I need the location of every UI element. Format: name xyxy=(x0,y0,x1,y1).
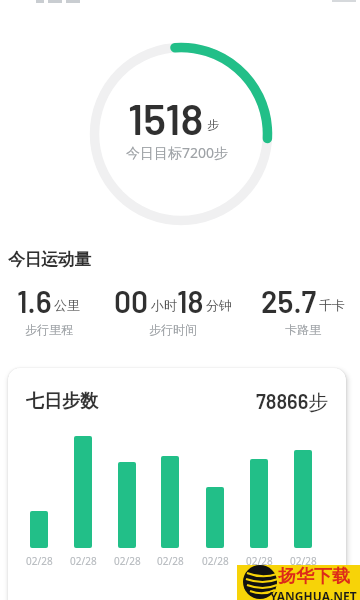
staticText: 25.7 xyxy=(261,283,317,319)
staticText: 02/28 xyxy=(246,554,273,568)
staticText: 今日运动量 xyxy=(8,249,91,270)
staticText: 02/28 xyxy=(290,554,317,568)
staticText: 02/28 xyxy=(202,554,229,568)
staticText: 卡路里 xyxy=(285,322,321,337)
staticText: 今日目标7200步 xyxy=(126,143,229,162)
staticText: 步行时间 xyxy=(149,322,197,337)
staticText: 千卡 xyxy=(319,297,345,313)
staticText: 小时 xyxy=(151,297,177,313)
staticText: 18 xyxy=(177,283,204,319)
staticText: 00 xyxy=(114,283,149,319)
staticText: 分钟 xyxy=(206,297,232,313)
staticText: 02/28 xyxy=(70,554,97,568)
staticText: 78866步 xyxy=(256,389,329,415)
staticText: 02/28 xyxy=(157,554,184,568)
staticText: 1.6 xyxy=(17,283,52,319)
button[interactable]: 七日步数 xyxy=(8,368,346,600)
button[interactable]: 扬华下载 xyxy=(237,565,360,600)
staticText: YANGHUA.NET xyxy=(270,588,357,600)
staticText: 02/28 xyxy=(114,554,141,568)
staticText: 步 xyxy=(207,117,219,132)
staticText: 七日步数 xyxy=(26,390,98,413)
staticText: 公里 xyxy=(54,297,80,313)
staticText: 02/28 xyxy=(26,554,53,568)
staticText: 步行里程 xyxy=(25,322,73,337)
staticText: 扬华下载 xyxy=(278,565,350,588)
staticText: 1518 xyxy=(128,92,204,144)
